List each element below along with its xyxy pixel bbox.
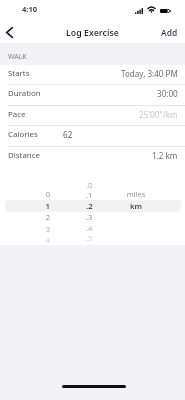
button[interactable]: Starts	[0, 65, 185, 86]
button[interactable]: Calories	[0, 126, 185, 147]
staticText: 4	[0, 235, 50, 245]
staticText: .5	[86, 233, 116, 243]
staticText: .4	[86, 223, 116, 233]
staticText: .3	[86, 212, 116, 222]
button[interactable]: Add	[154, 23, 185, 42]
staticText: .1	[86, 190, 116, 200]
staticText: Log Exercise	[66, 27, 119, 39]
button[interactable]: Back	[0, 22, 20, 43]
staticText: 1.2 km	[152, 150, 178, 161]
staticText: miles	[111, 189, 161, 199]
staticText: 2	[0, 212, 50, 222]
staticText: Calories	[8, 129, 38, 140]
staticText: 1	[0, 201, 50, 212]
button[interactable]: Duration	[0, 85, 185, 106]
staticText: 62	[63, 129, 73, 140]
staticText: Starts	[8, 68, 30, 79]
staticText: km	[111, 201, 161, 212]
staticText: 30:00	[157, 88, 178, 99]
staticText: Distance	[8, 150, 40, 161]
staticText: WALK	[8, 52, 27, 62]
staticText: Today, 3:40 PM	[121, 68, 178, 79]
button[interactable]: Pace	[0, 106, 185, 127]
staticText: 0	[0, 189, 50, 199]
staticText: Pace	[8, 109, 26, 120]
staticText: 4:10	[22, 4, 38, 14]
staticText: Add	[161, 27, 178, 38]
staticText: .2	[86, 201, 116, 212]
button[interactable]: Distance	[0, 147, 185, 168]
staticText: .0	[86, 180, 116, 190]
staticText: 3	[0, 224, 50, 234]
staticText: Duration	[8, 88, 41, 99]
staticText: 25'00"/km	[139, 109, 178, 120]
